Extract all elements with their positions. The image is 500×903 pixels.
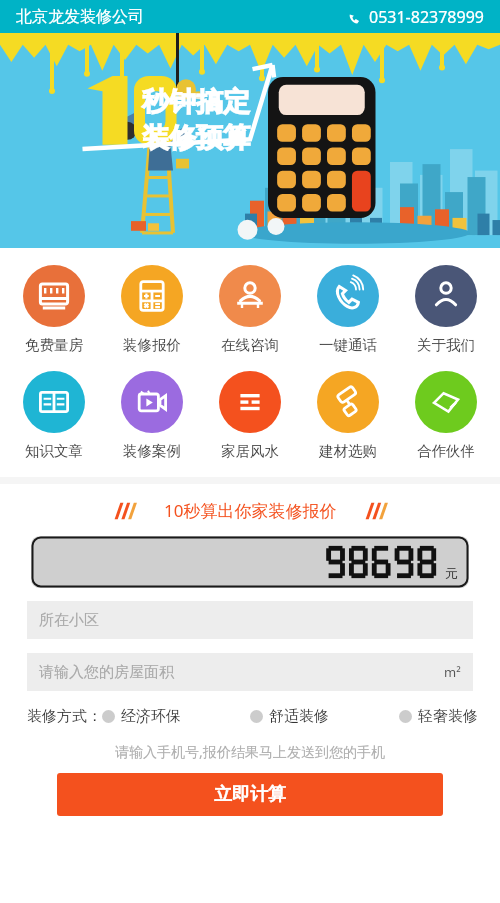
button[interactable]: 请输入您的房屋面积 [27,653,473,691]
staticText: 在线咨询 [221,336,279,354]
staticText: 请输入您的房屋面积 [39,663,174,682]
button[interactable]: 在线咨询 [201,265,299,354]
staticText: 经济环保 [121,707,181,726]
staticText: 知识文章 [25,442,83,460]
staticText: 装修预算 [142,121,250,155]
staticText: 10秒算出你家装修报价 [164,499,337,522]
staticText: 家居风水 [221,442,279,460]
staticText: 秒钟搞定 [142,85,250,119]
button[interactable]: 家居风水 [201,371,299,460]
button[interactable]: 所在小区 [27,601,473,639]
staticText: 关于我们 [417,336,475,354]
button[interactable]: 装修报价 [103,265,201,354]
staticText: 所在小区 [39,611,99,630]
staticText: 元 [445,565,458,581]
staticText: 一键通话 [319,336,377,354]
staticText: m² [444,663,461,681]
staticText: 舒适装修 [269,707,329,726]
staticText: 立即计算 [214,783,286,806]
button[interactable]: 北京龙发装修公司 [16,7,144,27]
staticText: 请输入手机号,报价结果马上发送到您的手机 [0,742,500,761]
button[interactable]: 建材选购 [299,371,397,460]
staticText: 免费量房 [25,336,83,354]
button[interactable]: 立即计算 [57,773,443,816]
staticText: 装修案例 [123,442,181,460]
button[interactable]: 合作伙伴 [397,371,495,460]
staticText: 装修报价 [123,336,181,354]
staticText: 0531-82378999 [369,6,484,28]
button[interactable]: Call 0531-82378999 [348,6,484,28]
staticText: 建材选购 [319,442,377,460]
button[interactable]: 秒钟搞定 [0,33,500,248]
button[interactable]: 经济环保 [102,707,181,726]
button[interactable]: 关于我们 [397,265,495,354]
button[interactable]: 知识文章 [5,371,103,460]
button[interactable]: 轻奢装修 [399,707,478,726]
button[interactable]: 免费量房 [5,265,103,354]
button[interactable]: 一键通话 [299,265,397,354]
staticText: 轻奢装修 [418,707,478,726]
staticText: 合作伙伴 [417,442,475,460]
button[interactable]: 装修案例 [103,371,201,460]
button[interactable]: 舒适装修 [250,707,329,726]
staticText: 装修方式： [27,707,102,726]
